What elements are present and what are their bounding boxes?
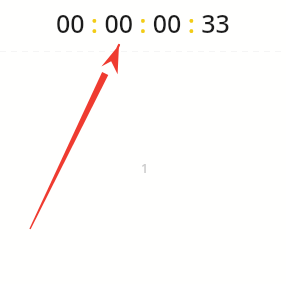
button[interactable]: 00 : 00 : 00 : 33 (56, 6, 230, 40)
other: Pointer arrow (0, 0, 286, 284)
staticText: 1 (141, 159, 149, 177)
staticText: 00 : 00 : 00 : 33 (56, 6, 230, 40)
